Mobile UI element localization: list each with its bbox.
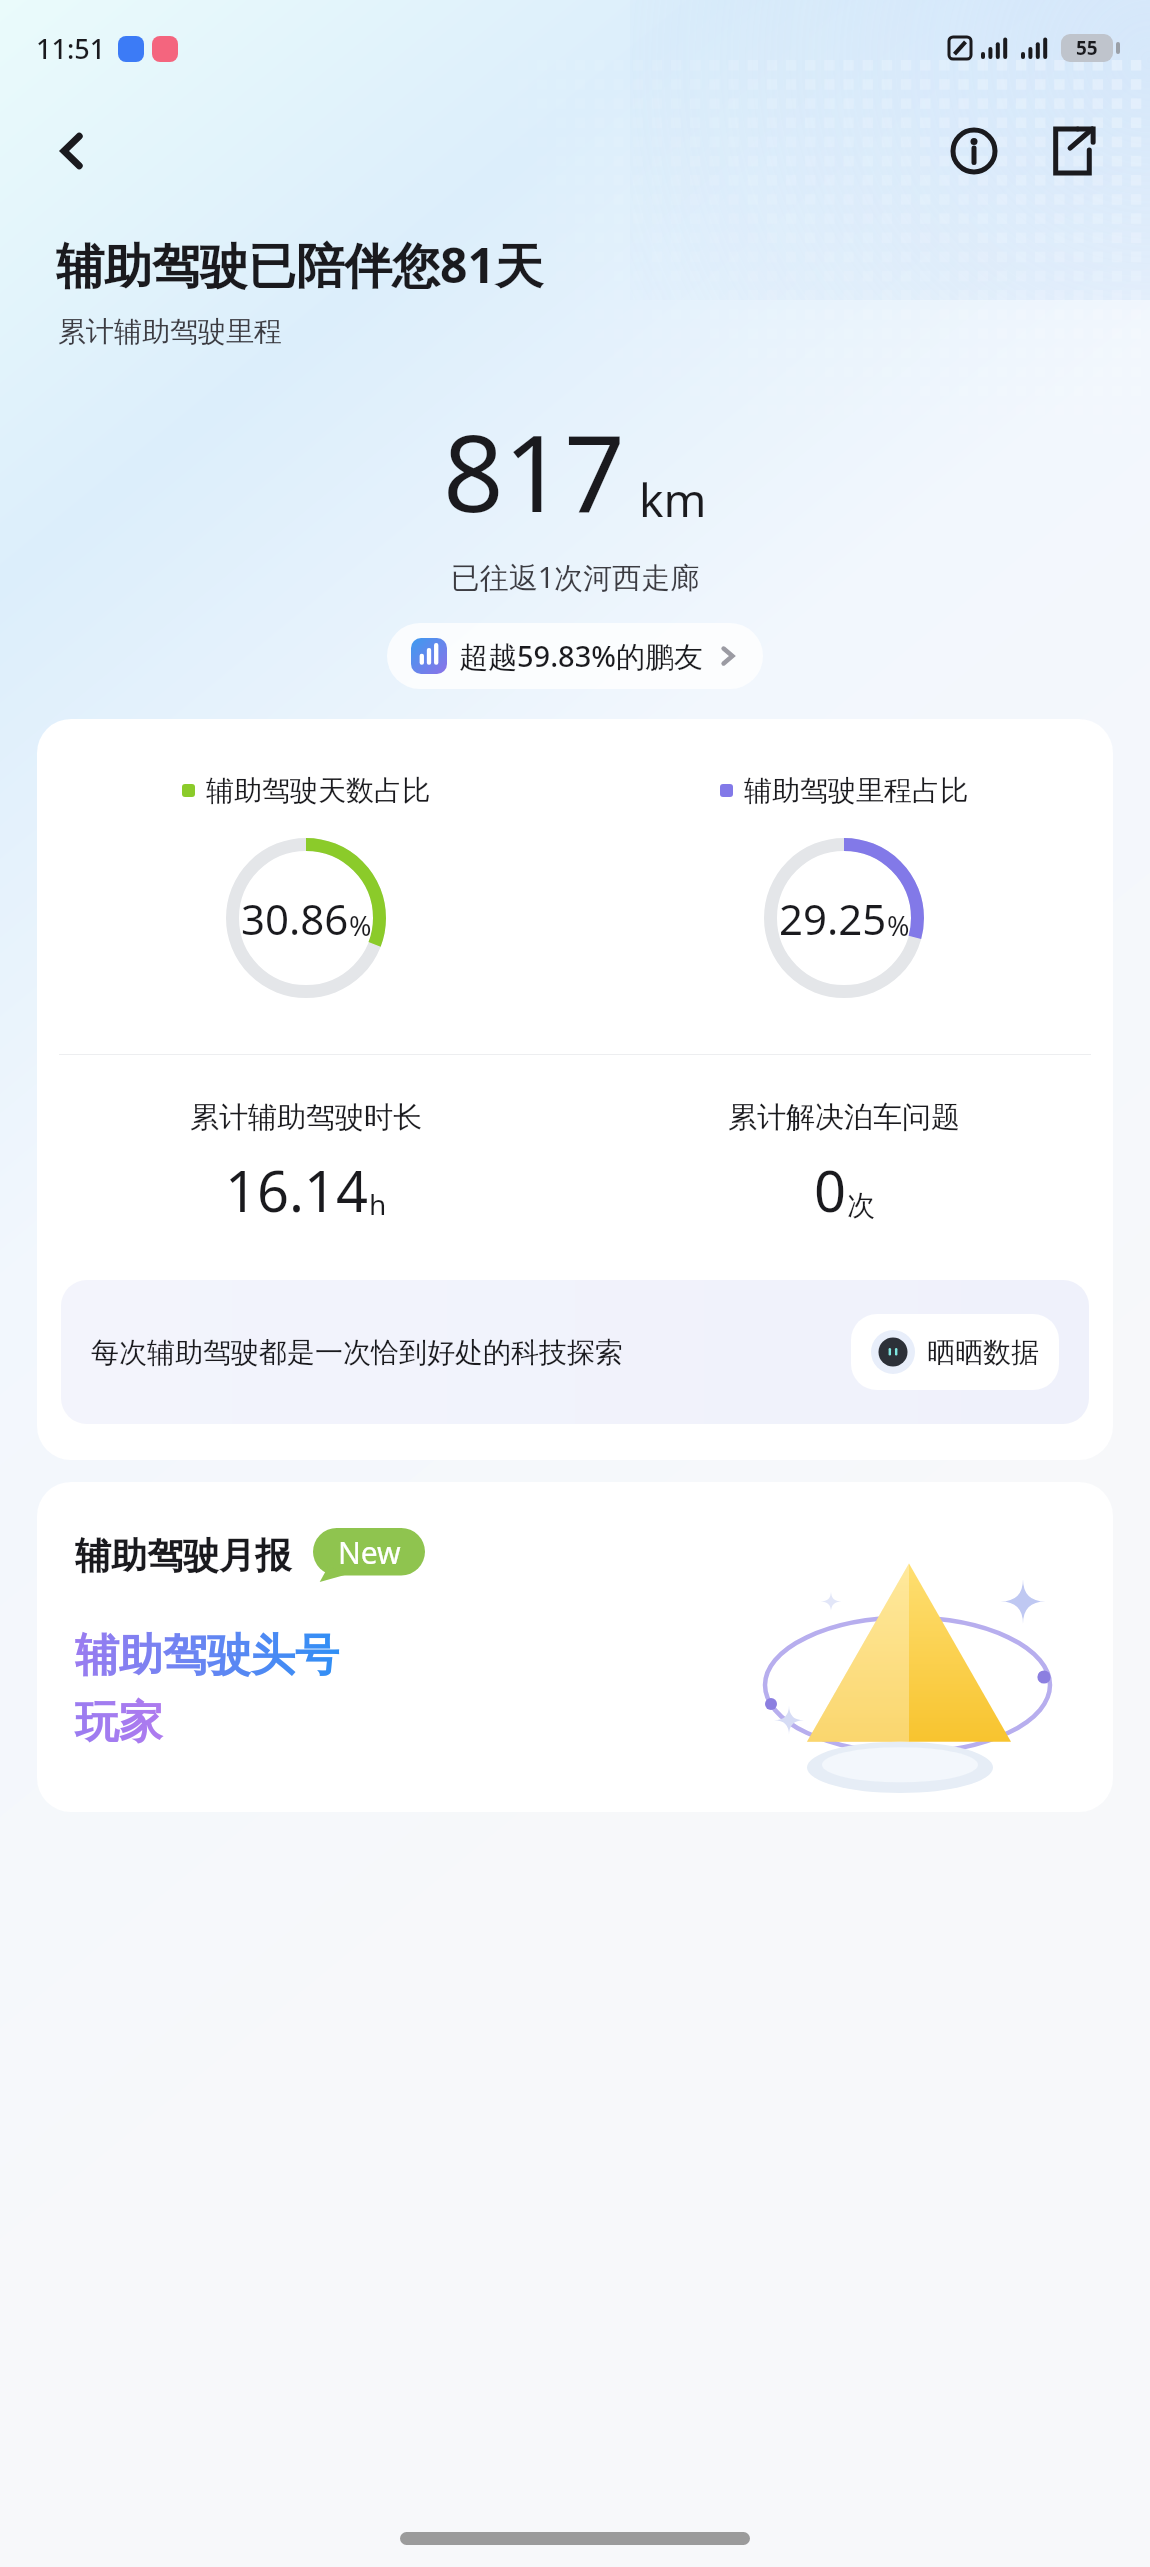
- button[interactable]: Share: [1034, 113, 1110, 189]
- button[interactable]: Info: [936, 113, 1012, 189]
- staticText: 晒晒数据: [927, 1335, 1039, 1370]
- staticText: 16.14: [225, 1152, 369, 1228]
- staticText: 辅助驾驶已陪伴您81天: [56, 232, 543, 298]
- staticText: 累计解决泊车问题: [728, 1099, 960, 1136]
- staticText: 0: [814, 1152, 847, 1228]
- staticText: 次: [847, 1188, 875, 1223]
- button[interactable]: Back: [34, 113, 110, 189]
- staticText: 辅助驾驶里程占比: [744, 773, 968, 808]
- staticText: 11:51: [36, 30, 106, 67]
- staticText: 已往返1次河西走廊: [0, 557, 1150, 597]
- staticText: %: [349, 907, 372, 944]
- staticText: 29.25: [779, 890, 887, 947]
- button[interactable]: 超越59.83%的鹏友: [387, 623, 763, 689]
- staticText: 辅助驾驶头号: [75, 1628, 339, 1683]
- button[interactable]: 辅助驾驶月报: [37, 1482, 1113, 1812]
- staticText: New: [338, 1532, 401, 1573]
- button[interactable]: 晒晒数据: [851, 1314, 1059, 1390]
- staticText: 辅助驾驶天数占比: [206, 773, 430, 808]
- staticText: 817: [443, 399, 625, 543]
- staticText: %: [887, 907, 910, 944]
- staticText: 超越59.83%的鹏友: [459, 636, 703, 676]
- staticText: 55: [1076, 35, 1098, 61]
- staticText: 每次辅助驾驶都是一次恰到好处的科技探索: [91, 1335, 833, 1370]
- staticText: 玩家: [75, 1695, 163, 1750]
- staticText: 累计辅助驾驶时长: [190, 1099, 422, 1136]
- staticText: 累计辅助驾驶里程: [58, 314, 282, 349]
- staticText: 30.86: [241, 890, 349, 947]
- staticText: 辅助驾驶月报: [75, 1533, 291, 1578]
- staticText: km: [639, 468, 707, 531]
- staticText: h: [369, 1185, 387, 1223]
